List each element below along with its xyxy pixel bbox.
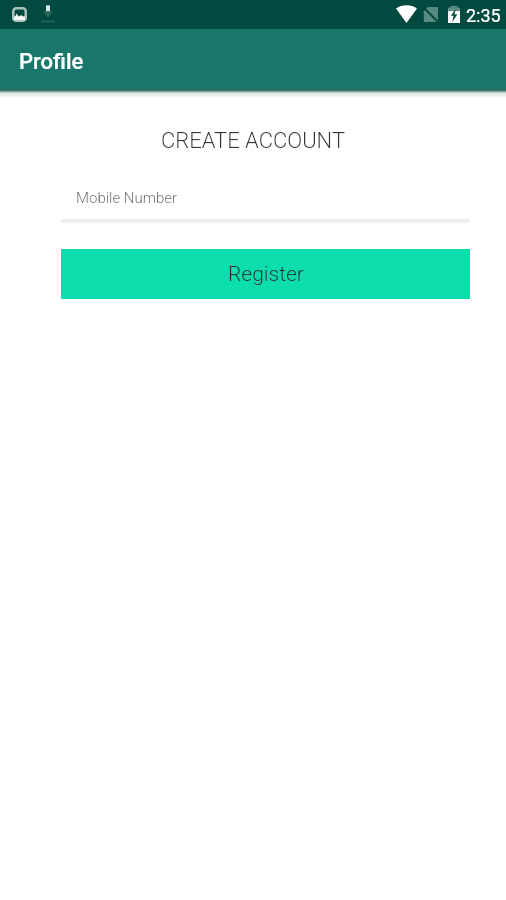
staticText: Register xyxy=(228,262,304,287)
other: Battery charging xyxy=(448,6,460,23)
other: Download xyxy=(41,5,55,23)
other: Screenshot xyxy=(12,7,27,22)
staticText: CREATE ACCOUNT xyxy=(0,128,506,154)
other: Wi-Fi xyxy=(396,6,417,23)
button[interactable]: Register xyxy=(61,249,470,299)
staticText: 2:35 xyxy=(466,5,501,26)
other: No SIM card xyxy=(423,7,438,22)
button[interactable]: Mobile Number xyxy=(61,181,470,219)
staticText: Profile xyxy=(19,49,84,75)
